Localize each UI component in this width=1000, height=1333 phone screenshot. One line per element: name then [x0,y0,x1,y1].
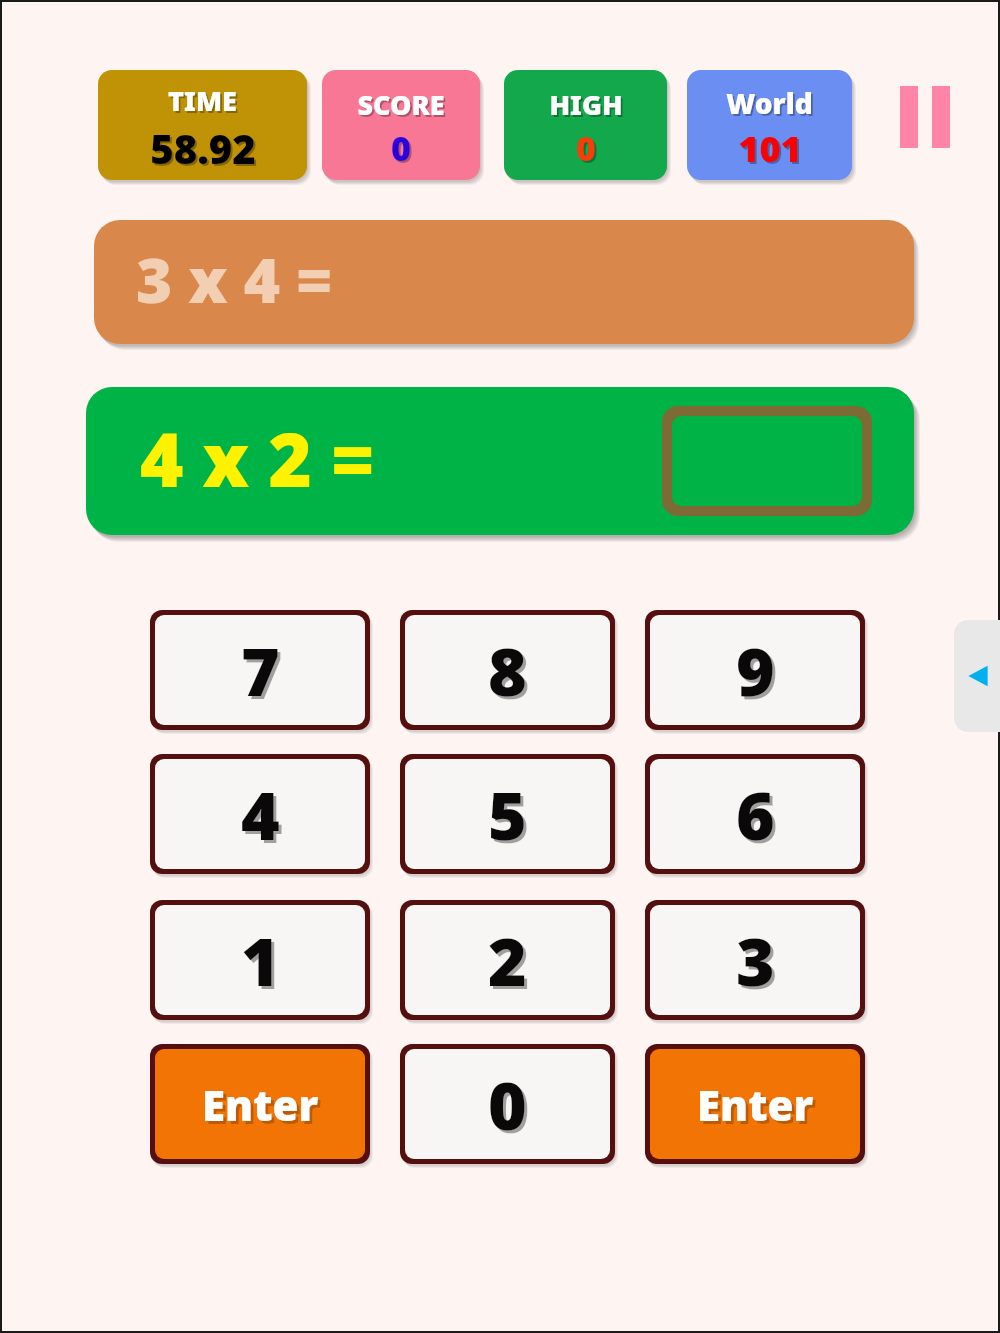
button[interactable]: 5 [405,759,610,869]
button[interactable]: 3 [650,905,860,1015]
staticText: 4 [244,772,283,862]
button[interactable]: Open side panel [954,620,1000,732]
button[interactable]: HIGH [504,70,667,180]
staticText: 0 [491,1062,530,1152]
staticText: 0 [576,125,596,171]
staticText: 2 [491,918,530,1008]
staticText: Enter [697,1076,814,1133]
button[interactable]: 8 [405,615,610,725]
staticText: SCORE [357,86,445,123]
button[interactable]: Enter [650,1049,860,1159]
staticText: 101 [738,124,802,173]
staticText: 58.92 [152,123,258,177]
button[interactable]: SCORE [322,70,480,180]
staticText: Enter [700,1079,817,1136]
staticText: World [726,84,813,122]
staticText: SCORE [359,88,447,125]
button[interactable]: 2 [405,905,610,1015]
staticText: TIME [170,84,239,121]
staticText: TIME [168,82,237,119]
staticText: 8 [491,628,530,718]
staticText: 5 [491,772,530,862]
staticText: 3 x 4 = [136,237,333,321]
staticText: 7 [244,628,283,718]
button[interactable]: 9 [650,615,860,725]
staticText: 0 [488,1059,527,1149]
staticText: 58.92 [150,121,256,175]
button[interactable]: Pause [896,82,954,152]
button[interactable]: 1 [155,905,365,1015]
staticText: Enter [205,1079,322,1136]
staticText: 4 [241,769,280,859]
staticText: HIGH [551,88,625,125]
button[interactable]: 6 [650,759,860,869]
staticText: 1 [244,918,283,1008]
staticText: 1 [241,915,280,1005]
staticText: 0 [391,125,411,171]
staticText: 0 [393,127,413,173]
button[interactable]: World [687,70,852,180]
staticText: HIGH [549,86,623,123]
staticText: 3 [739,918,778,1008]
button[interactable]: Answer [672,416,862,506]
staticText: 5 [488,769,527,859]
staticText: 8 [488,625,527,715]
button[interactable]: Enter [155,1049,365,1159]
staticText: 7 [241,625,280,715]
staticText: Enter [202,1076,319,1133]
staticText: 9 [739,628,778,718]
staticText: World [728,86,815,124]
staticText: 6 [739,772,778,862]
staticText: 4 x 2 = [140,408,375,509]
button[interactable]: TIME [98,70,307,180]
staticText: 3 [736,915,775,1005]
button[interactable]: 3 x 4 = [94,220,914,344]
button[interactable]: 0 [405,1049,610,1159]
staticText: 101 [740,126,804,175]
button[interactable]: 4 [155,759,365,869]
staticText: 6 [736,769,775,859]
staticText: 0 [578,127,598,173]
button[interactable]: 7 [155,615,365,725]
button[interactable]: 4 x 2 = [86,387,914,535]
staticText: 9 [736,625,775,715]
staticText: 2 [488,915,527,1005]
